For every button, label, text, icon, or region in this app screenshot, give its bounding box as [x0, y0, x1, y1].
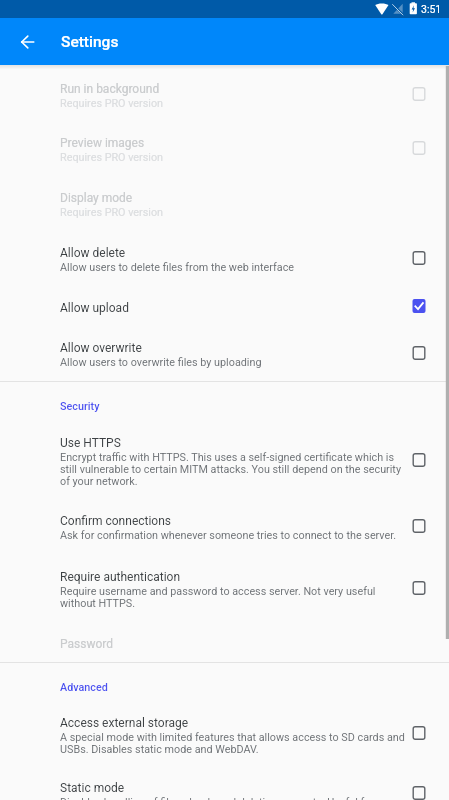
staticText: Access external storage [60, 716, 189, 730]
staticText: Require username and password to access … [60, 586, 408, 610]
staticText: Password [60, 637, 114, 651]
staticText: Display mode [60, 191, 133, 205]
staticText: Security [60, 400, 100, 413]
staticText: Disables handling of file uploads and de… [60, 797, 408, 800]
staticText: Requires PRO version [60, 152, 164, 164]
button[interactable]: Use HTTPS [0, 423, 449, 501]
button[interactable]: Confirm connections [0, 501, 449, 557]
staticText: Run in background [60, 82, 160, 96]
button[interactable]: Allow delete [0, 233, 449, 288]
staticText: Use HTTPS [60, 436, 121, 450]
button[interactable]: Allow overwrite [0, 328, 449, 381]
button[interactable]: Navigate up [8, 23, 46, 61]
staticText: Preview images [60, 136, 145, 150]
staticText: Static mode [60, 781, 125, 795]
staticText: Allow upload [60, 301, 129, 315]
staticText: Allow overwrite [60, 341, 142, 355]
staticText: Requires PRO version [60, 98, 164, 110]
staticText: Advanced [60, 681, 108, 694]
staticText: Encrypt traffic with HTTPS. This uses a … [60, 452, 408, 488]
staticText: A special mode with limited features tha… [60, 732, 408, 756]
button[interactable]: Allow upload [0, 288, 449, 328]
staticText: Allow users to overwrite files by upload… [60, 357, 262, 369]
button[interactable]: Preview images [0, 123, 449, 178]
button[interactable]: Require authentication [0, 557, 449, 624]
staticText: Ask for confirmation whenever someone tr… [60, 530, 397, 542]
staticText: Allow users to delete files from the web… [60, 262, 295, 274]
button[interactable]: Display mode [0, 178, 449, 233]
staticText: Requires PRO version [60, 207, 164, 219]
staticText: Require authentication [60, 570, 181, 584]
staticText: 3:51 [421, 3, 442, 15]
button[interactable]: Static mode [0, 768, 449, 800]
staticText: Confirm connections [60, 514, 172, 528]
staticText: Settings [61, 33, 119, 51]
button[interactable]: Access external storage [0, 703, 449, 768]
button[interactable]: Password [0, 624, 449, 662]
button[interactable]: Run in background [0, 69, 449, 123]
staticText: Allow delete [60, 246, 126, 260]
